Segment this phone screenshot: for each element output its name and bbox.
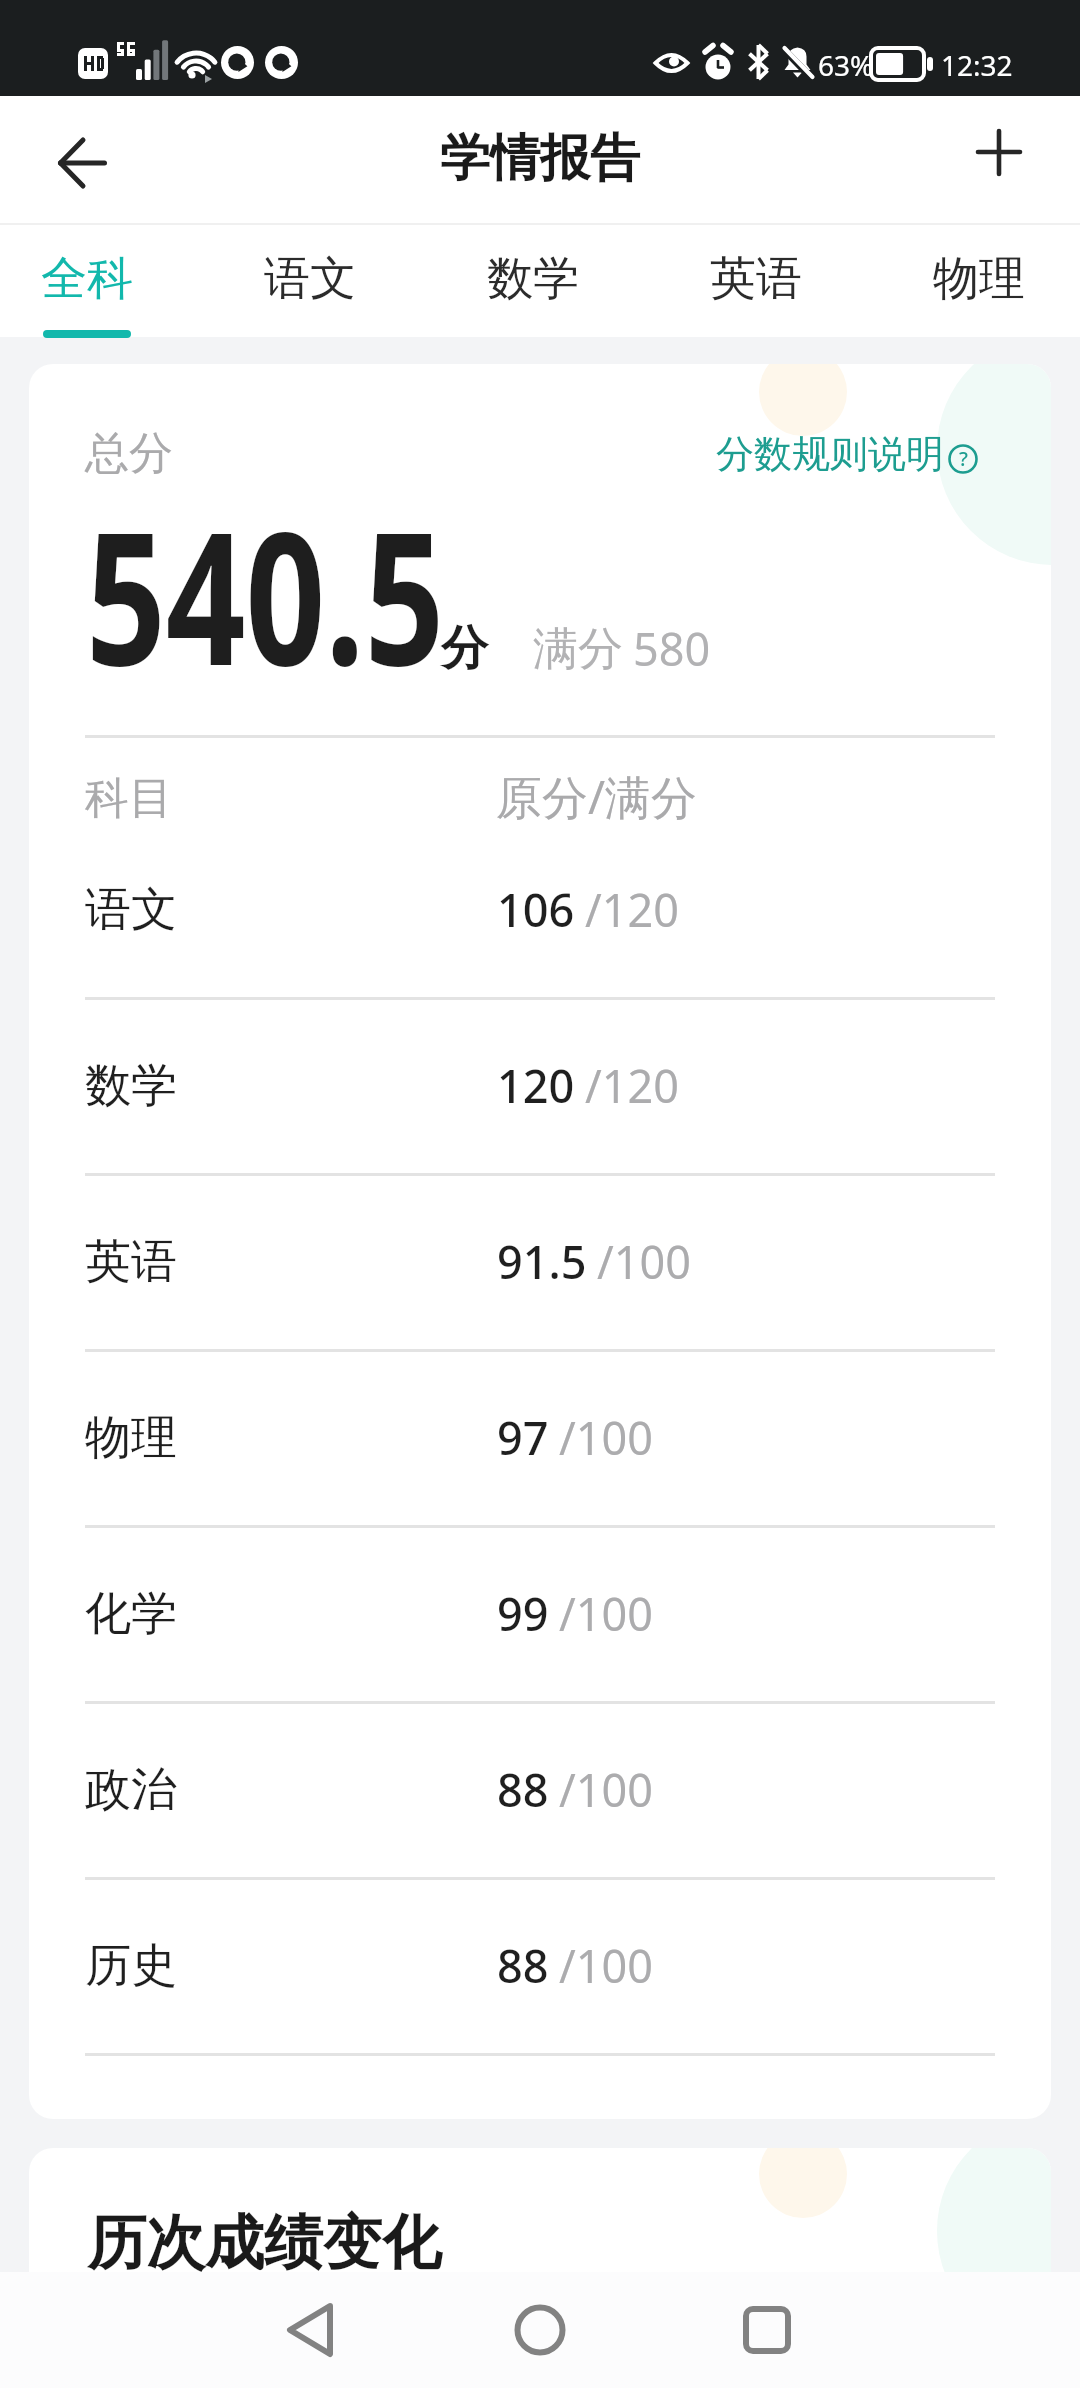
staticText: 数学 (487, 250, 579, 308)
button[interactable]: 语文 (202, 225, 418, 337)
button[interactable]: Back (241, 2272, 385, 2388)
staticText: 540.5 (86, 468, 444, 719)
button[interactable]: Recents (695, 2272, 839, 2388)
staticText: /100 (559, 1583, 653, 1644)
button[interactable]: 数学 (425, 225, 641, 337)
staticText: /100 (597, 1231, 691, 1292)
staticText: 91.5 (497, 1231, 587, 1292)
staticText: 物理 (933, 250, 1025, 308)
button[interactable]: 数学 (29, 997, 1051, 1173)
button[interactable]: 英语 (29, 1173, 1051, 1349)
staticText: /120 (585, 879, 679, 940)
button[interactable]: 物理 (871, 225, 1080, 337)
staticText: 分数规则说明 (716, 430, 944, 478)
staticText: 全科 (41, 250, 133, 308)
staticText: 英语 (85, 1233, 177, 1291)
staticText: 科目 (85, 771, 173, 826)
button[interactable]: 化学 (29, 1525, 1051, 1701)
button[interactable]: 物理 (29, 1349, 1051, 1525)
staticText: /120 (585, 1055, 679, 1116)
staticText: /100 (559, 1759, 653, 1820)
staticText: 学情报告 (440, 127, 640, 190)
button[interactable]: Home (468, 2272, 612, 2388)
staticText: 化学 (85, 1585, 177, 1643)
other: Scoring rules help (948, 444, 978, 474)
staticText: 分 (441, 619, 488, 678)
staticText: 数学 (85, 1057, 177, 1115)
staticText: /100 (559, 1935, 653, 1996)
staticText: 580 (633, 618, 711, 679)
staticText: 政治 (85, 1761, 177, 1819)
staticText: 物理 (85, 1409, 177, 1467)
button[interactable]: 英语 (648, 225, 864, 337)
button[interactable]: Add (948, 111, 1048, 211)
staticText: 106 (497, 879, 575, 940)
button[interactable]: Back (30, 111, 130, 211)
staticText: 原分/满分 (496, 765, 698, 828)
staticText: 97 (497, 1407, 549, 1468)
staticText: 88 (497, 1759, 549, 1820)
staticText: 99 (497, 1583, 549, 1644)
staticText: ? (959, 445, 968, 472)
staticText: 12:32 (941, 46, 1013, 84)
staticText: 满分 (533, 621, 623, 678)
button[interactable]: 政治 (29, 1701, 1051, 1877)
staticText: 120 (497, 1055, 575, 1116)
button[interactable]: 语文 (29, 821, 1051, 997)
staticText: /100 (559, 1407, 653, 1468)
staticText: 语文 (264, 250, 356, 308)
staticText: 语文 (85, 881, 177, 939)
button[interactable]: 分数规则说明 (716, 430, 978, 478)
button[interactable]: 历史 (29, 1877, 1051, 2053)
button[interactable]: 全科 (0, 225, 195, 337)
staticText: 历史 (85, 1937, 177, 1995)
staticText: 88 (497, 1935, 549, 1996)
staticText: 总分 (85, 426, 173, 481)
staticText: 历次成绩变化 (87, 2206, 441, 2280)
staticText: 63% (818, 46, 874, 84)
staticText: 英语 (710, 250, 802, 308)
